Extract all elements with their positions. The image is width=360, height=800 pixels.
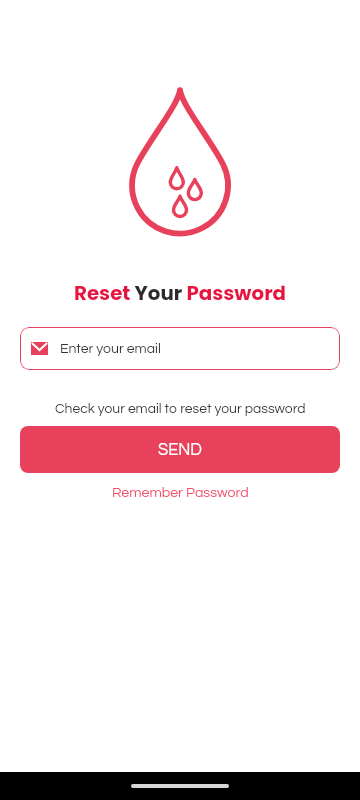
button[interactable]: Remember Password xyxy=(106,482,255,503)
button[interactable]: SEND xyxy=(20,426,340,473)
staticText: Remember Password xyxy=(112,485,249,500)
staticText: Check your email to reset your password xyxy=(55,402,306,416)
button[interactable]: Email xyxy=(20,327,340,370)
staticText: Reset Your Password xyxy=(74,279,287,307)
staticText: SEND xyxy=(158,441,202,458)
other: Email xyxy=(31,342,48,355)
staticText: Enter your email xyxy=(60,342,161,356)
